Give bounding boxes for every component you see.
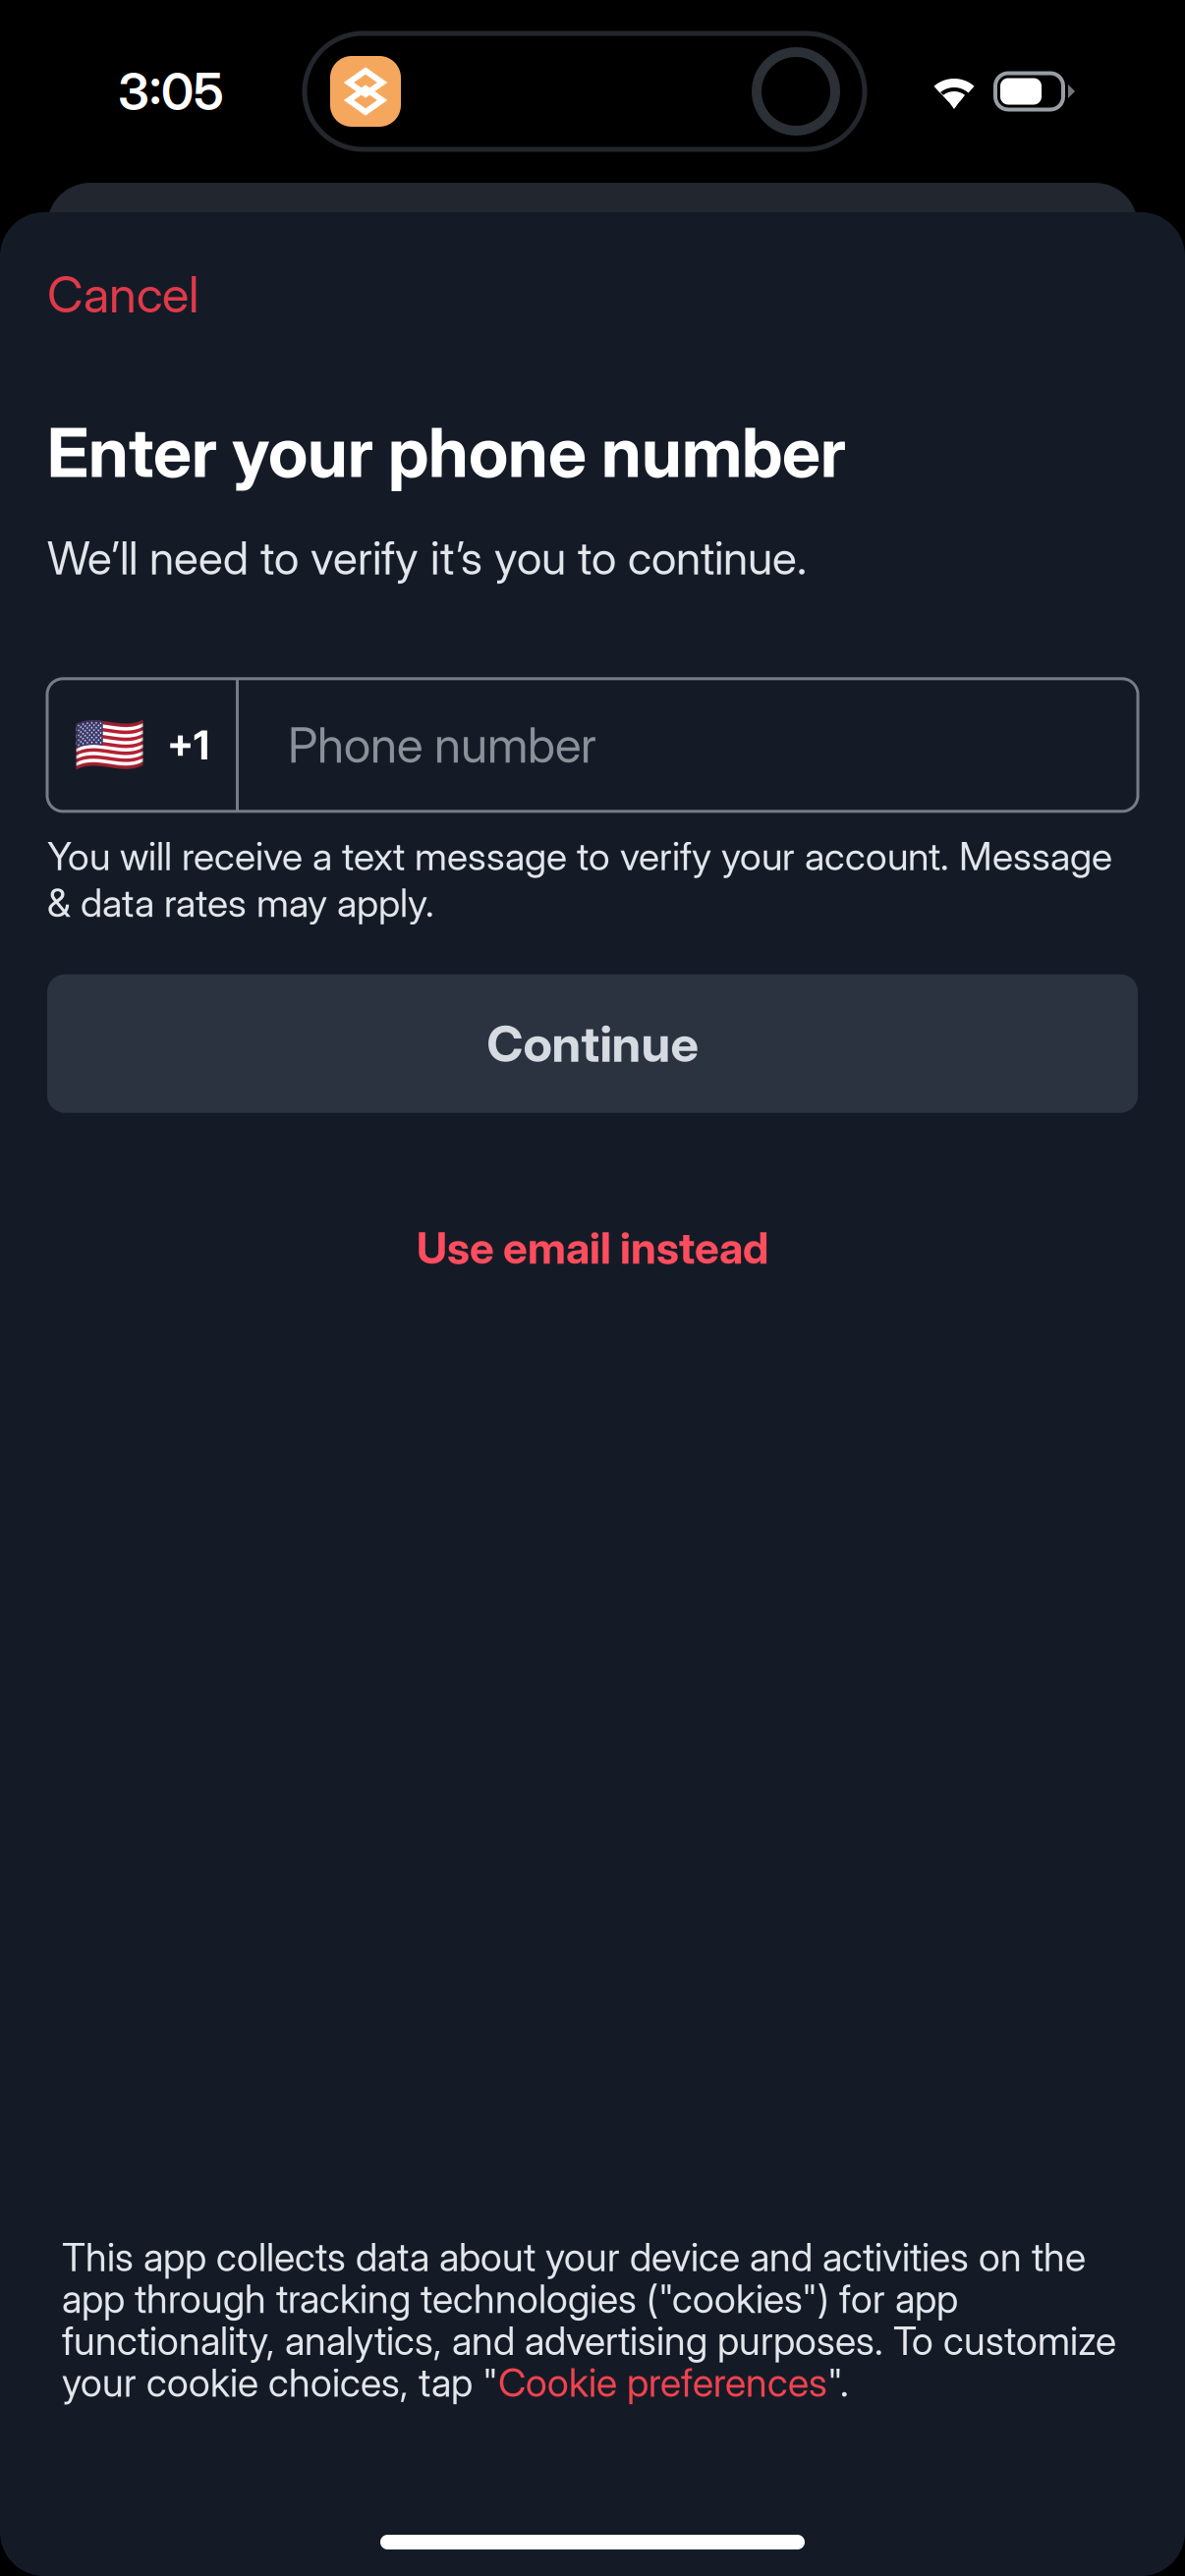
staticText: Enter your phone number [47, 411, 846, 493]
staticText: +1 [167, 720, 209, 770]
staticText: app through tracking technologies ("cook… [62, 2276, 958, 2322]
staticText: 🇺🇸 [74, 711, 145, 779]
button[interactable]: Continue [47, 974, 1138, 1113]
staticText: functionality, analytics, and advertisin… [62, 2317, 1116, 2364]
staticText: 3:05 [118, 60, 224, 122]
staticText: ". [827, 2359, 849, 2406]
staticText: your cookie choices, tap " [62, 2359, 498, 2406]
staticText: Cookie preferences [498, 2359, 827, 2406]
staticText: This app collects data about your device… [62, 2234, 1086, 2280]
button[interactable]: Phone number [239, 679, 1138, 811]
staticText: You will receive a text message to verif… [47, 833, 1112, 926]
button[interactable]: Cancel [0, 251, 246, 338]
button[interactable]: Country code, United States, plus 1 [47, 679, 236, 811]
staticText: We’ll need to verify it’s you to continu… [47, 531, 807, 585]
button[interactable]: Use email instead [47, 1194, 1138, 1302]
staticText: Use email instead [417, 1222, 768, 1274]
staticText: Cancel [47, 264, 198, 325]
staticText: Phone number [288, 716, 596, 774]
button[interactable]: Cookie preferences [498, 2359, 827, 2406]
staticText: Continue [487, 1014, 698, 1074]
